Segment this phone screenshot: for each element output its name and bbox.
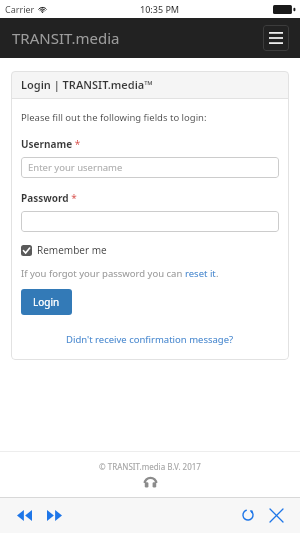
staticText: 10:35 PM bbox=[140, 3, 180, 15]
button[interactable]: Close bbox=[264, 503, 288, 527]
staticText: Enter your username bbox=[28, 161, 123, 174]
button[interactable]: Login bbox=[21, 289, 72, 315]
staticText: TRANSIT.media bbox=[12, 28, 120, 48]
staticText: Login | TRANSIT.media™ bbox=[21, 77, 153, 92]
button[interactable]: Enter your username bbox=[21, 157, 279, 178]
staticText: Didn't receive confirmation message? bbox=[66, 333, 234, 346]
button[interactable]: reset it bbox=[185, 267, 216, 280]
staticText: . bbox=[216, 267, 219, 280]
button[interactable]: Remember me bbox=[21, 243, 107, 257]
staticText: Username * bbox=[21, 137, 81, 151]
button[interactable]: Didn't receive confirmation message? bbox=[66, 333, 234, 346]
staticText: © TRANSIT.media B.V. 2017 bbox=[0, 461, 300, 472]
button[interactable]: Menu bbox=[263, 25, 289, 51]
button[interactable]: Forward bbox=[42, 503, 66, 527]
staticText: If you forgot your password you can bbox=[21, 267, 185, 280]
button[interactable]: Reload bbox=[236, 503, 260, 527]
staticText: Login bbox=[33, 295, 60, 309]
button[interactable]: Back bbox=[12, 503, 36, 527]
button[interactable] bbox=[21, 211, 279, 232]
staticText: Password * bbox=[21, 191, 77, 205]
staticText: Carrier bbox=[5, 3, 35, 15]
staticText: Please fill out the following fields to … bbox=[21, 111, 207, 124]
staticText: Remember me bbox=[37, 243, 107, 257]
staticText: reset it bbox=[185, 267, 216, 280]
